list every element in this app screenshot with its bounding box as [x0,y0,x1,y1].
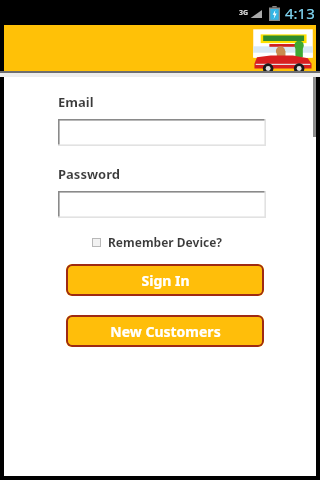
button[interactable]: Sign In [66,264,264,296]
staticText: 3G [239,8,249,18]
button[interactable] [58,119,266,146]
staticText: Sign In [141,271,190,290]
button[interactable]: Gumby's logo [252,27,314,73]
staticText: Email [58,93,94,111]
staticText: New Customers [110,322,221,341]
button[interactable]: Remember Device? [92,234,223,250]
staticText: Password [58,165,120,183]
button[interactable] [58,191,266,218]
button[interactable]: New Customers [66,315,264,347]
staticText: 4:13 [285,3,315,23]
staticText: Remember Device? [108,234,223,250]
